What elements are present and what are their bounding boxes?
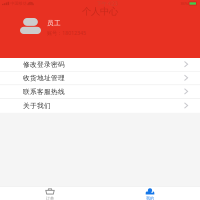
button[interactable]: 关于我们 [0,99,200,113]
staticText: 订单 [46,196,54,200]
staticText: 个人中心 [82,6,118,17]
staticText: 收货地址管理 [23,74,65,82]
staticText: 修改登录密码 [23,60,65,69]
staticText: 关于我们 [23,102,51,110]
staticText: 联系客服热线 [23,88,65,96]
button[interactable]: 员工 [0,16,200,58]
staticText: 账号：18012345 [47,29,86,36]
staticText: 中国移动 [10,1,26,6]
staticText: 86% [180,1,187,6]
button[interactable]: 修改登录密码 [0,58,200,72]
staticText: 下午 4:23 [97,0,118,7]
button[interactable]: 收货地址管理 [0,72,200,85]
staticText: 员工 [47,19,61,27]
button[interactable]: 联系客服热线 [0,85,200,99]
button[interactable]: 订单 [0,186,100,200]
button[interactable]: 我的 [100,186,200,200]
staticText: 我的 [146,196,154,200]
